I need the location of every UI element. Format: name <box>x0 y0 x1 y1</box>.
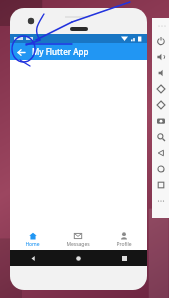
button[interactable]: Home <box>10 230 55 250</box>
button[interactable]: Overview <box>152 177 169 193</box>
button[interactable]: Back <box>14 45 28 59</box>
staticText: Home <box>25 241 40 248</box>
button[interactable]: Zoom <box>152 129 169 145</box>
button[interactable]: Home <box>71 251 85 265</box>
button[interactable]: Rotate right <box>152 97 169 113</box>
button[interactable]: Messages <box>55 230 101 250</box>
staticText: My Flutter App <box>32 46 89 57</box>
button[interactable]: Profile <box>101 230 147 250</box>
button[interactable]: More <box>152 193 169 209</box>
button[interactable]: Back <box>26 251 40 265</box>
button[interactable]: Rotate left <box>152 81 169 97</box>
staticText: Messages <box>66 241 90 248</box>
button[interactable]: Recents <box>117 251 131 265</box>
button[interactable]: Volume down <box>152 65 169 81</box>
button[interactable]: Power <box>152 33 169 49</box>
staticText: Profile <box>116 241 132 248</box>
button[interactable]: Volume up <box>152 49 169 65</box>
button[interactable]: Screenshot <box>152 113 169 129</box>
button[interactable]: Back <box>152 145 169 161</box>
button[interactable]: Home <box>152 161 169 177</box>
